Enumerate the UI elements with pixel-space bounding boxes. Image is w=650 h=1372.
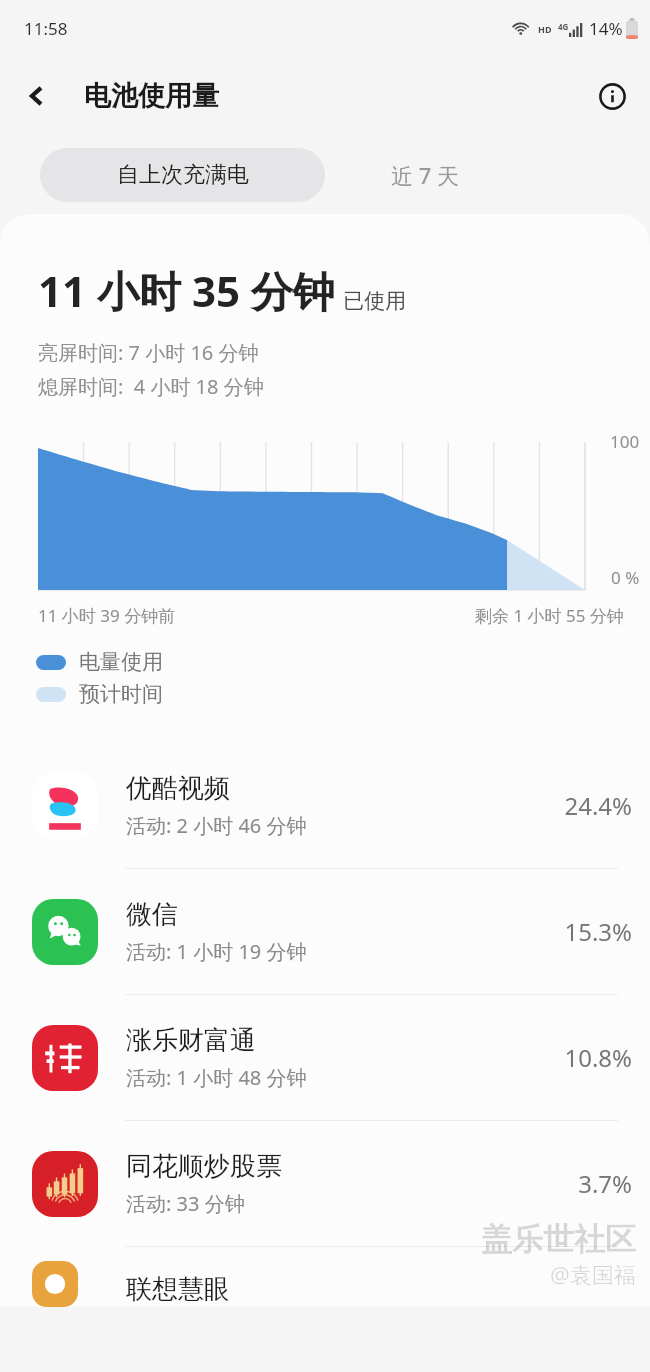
staticText: 联想慧眼 [126, 1273, 230, 1306]
staticText: 14% [589, 17, 623, 40]
staticText: 涨乐财富通 [126, 1024, 256, 1057]
button[interactable]: 优酷视频 [0, 743, 650, 869]
staticText: 电池使用量 [84, 79, 219, 113]
staticText: 活动: 1 小时 48 分钟 [126, 1064, 307, 1091]
staticText: 活动: 1 小时 19 分钟 [126, 938, 307, 965]
staticText: 11:58 [24, 17, 68, 40]
button[interactable]: 近 7 天 [325, 148, 525, 202]
staticText: 4G [558, 21, 569, 32]
staticText: 同花顺炒股票 [126, 1150, 282, 1183]
button[interactable]: 涨乐财富通 [0, 995, 650, 1121]
staticText: @袁国福 [550, 1259, 636, 1289]
button[interactable]: 自上次充满电 [40, 148, 325, 202]
staticText: 盖乐世社区 [481, 1220, 636, 1259]
staticText: 亮屏时间: 7 小时 16 分钟 [38, 339, 259, 366]
staticText: 电量使用 [79, 649, 163, 675]
staticText: 11 小时 35 分钟 [38, 262, 335, 319]
staticText: 3.7% [520, 1167, 632, 1200]
staticText: HD [538, 23, 552, 35]
staticText: 11 小时 39 分钟前 [38, 604, 176, 627]
button[interactable]: Back [14, 73, 60, 119]
button[interactable]: 同花顺炒股票 [0, 1121, 650, 1247]
staticText: 近 7 天 [391, 160, 460, 190]
staticText: 24.4% [520, 789, 632, 822]
staticText: 100 [610, 430, 640, 453]
staticText: 10.8% [520, 1041, 632, 1074]
button[interactable]: 微信 [0, 869, 650, 995]
staticText: 0 % [611, 566, 640, 589]
button[interactable]: 联想慧眼 [0, 1247, 650, 1307]
staticText: 15.3% [520, 915, 632, 948]
staticText: 熄屏时间: 4 小时 18 分钟 [38, 373, 264, 400]
staticText: 微信 [126, 898, 178, 931]
staticText: 优酷视频 [126, 772, 230, 805]
staticText: 活动: 2 小时 46 分钟 [126, 812, 307, 839]
button[interactable]: Information [588, 72, 636, 120]
staticText: 剩余 1 小时 55 分钟 [475, 604, 624, 627]
staticText: 活动: 33 分钟 [126, 1190, 245, 1217]
staticText: 自上次充满电 [117, 161, 249, 189]
staticText: 已使用 [343, 288, 406, 314]
staticText: 预计时间 [79, 681, 163, 707]
